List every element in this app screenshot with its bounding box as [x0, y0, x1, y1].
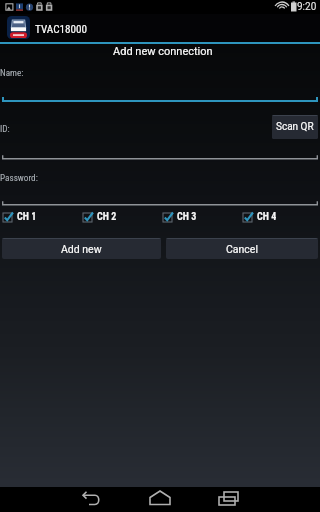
staticText: Add new [61, 243, 102, 255]
button[interactable]: Recents [214, 487, 244, 512]
staticText: CH 4 [257, 211, 277, 223]
button[interactable]: Home [145, 487, 175, 512]
staticText: CH 3 [177, 211, 197, 223]
button[interactable]: CH 2 [80, 211, 160, 223]
staticText: 9:20 [297, 1, 317, 13]
staticText: Scan QR [276, 121, 314, 133]
staticText: Password: [0, 172, 38, 183]
staticText: Cancel [226, 243, 258, 255]
staticText: CH 2 [97, 211, 117, 223]
button[interactable]: CH 1 [0, 211, 80, 223]
staticText: Add new connection [113, 45, 213, 58]
button[interactable]: CH 3 [160, 211, 240, 223]
button[interactable]: CH 4 [240, 211, 320, 223]
button[interactable]: Scan QR [272, 115, 318, 139]
button[interactable]: Back [77, 487, 107, 512]
button[interactable]: Cancel [166, 238, 318, 259]
staticText: ID: [0, 123, 10, 134]
button[interactable]: Add new [2, 238, 161, 259]
staticText: CH 1 [17, 211, 37, 223]
staticText: Name: [0, 67, 24, 78]
staticText: TVAC18000 [35, 23, 88, 36]
